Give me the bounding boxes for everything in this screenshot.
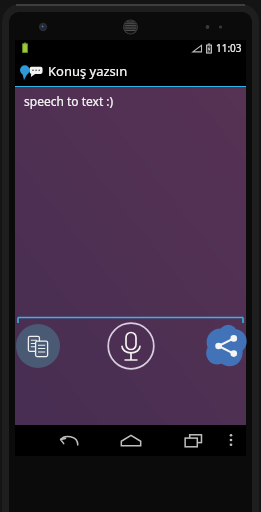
staticText: Konuş yazsın bbox=[48, 62, 128, 80]
staticText: 11:03 bbox=[216, 41, 242, 55]
button[interactable]: Start voice input bbox=[106, 321, 156, 371]
button[interactable]: Copy text bbox=[16, 324, 60, 368]
staticText: speech to text :) bbox=[24, 93, 114, 109]
button[interactable]: Home bbox=[111, 425, 151, 455]
button[interactable]: Recent apps bbox=[173, 425, 213, 455]
button[interactable]: Share bbox=[202, 323, 248, 369]
button[interactable]: More options bbox=[218, 425, 244, 455]
button[interactable]: Back bbox=[49, 425, 89, 455]
